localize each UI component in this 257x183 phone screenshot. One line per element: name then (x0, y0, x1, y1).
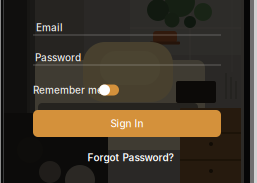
button[interactable]: Remember me (33, 79, 221, 101)
button[interactable]: Forgot Password? (75, 148, 185, 166)
button[interactable]: Password (33, 43, 221, 71)
staticText: Forgot Password? (87, 151, 173, 164)
staticText: Email (36, 21, 63, 34)
staticText: Sign In (110, 117, 143, 130)
staticText: Remember me (33, 84, 103, 96)
button[interactable]: Sign In (33, 110, 221, 137)
button[interactable]: Email (33, 13, 221, 41)
staticText: Password (35, 51, 81, 64)
